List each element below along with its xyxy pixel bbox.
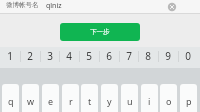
button[interactable]: e [42, 84, 59, 112]
button[interactable]: w [22, 84, 39, 112]
staticText: 1 [7, 49, 13, 63]
staticText: u [127, 95, 133, 107]
button[interactable]: 7 [119, 47, 139, 64]
button[interactable]: q [2, 84, 19, 112]
staticText: 3 [47, 49, 53, 63]
staticText: w [27, 95, 35, 107]
button[interactable]: 1 [0, 47, 20, 64]
staticText: qlniz [46, 1, 62, 11]
staticText: r [69, 95, 73, 107]
button[interactable]: 微博帐号名 [0, 0, 200, 13]
staticText: 0 [185, 49, 191, 63]
button[interactable]: u [121, 84, 138, 112]
staticText: y [107, 95, 112, 107]
button[interactable]: r [62, 84, 79, 112]
staticText: 4 [66, 49, 72, 63]
button[interactable]: p [180, 84, 197, 112]
button[interactable]: y [101, 84, 118, 112]
staticText: 6 [106, 49, 112, 63]
button[interactable]: o [160, 84, 177, 112]
button[interactable]: i [141, 84, 158, 112]
button[interactable]: 9 [158, 47, 178, 64]
button[interactable]: 3 [40, 47, 60, 64]
button[interactable]: 8 [138, 47, 158, 64]
button[interactable]: 0 [178, 47, 198, 64]
staticText: 微博帐号名 [6, 1, 39, 9]
button[interactable]: 5 [79, 47, 99, 64]
button[interactable]: 下一步 [60, 23, 140, 41]
staticText: 8 [145, 49, 151, 63]
button[interactable]: t [81, 84, 98, 112]
button[interactable]: 4 [59, 47, 79, 64]
button[interactable]: 6 [99, 47, 119, 64]
staticText: q [8, 95, 14, 107]
staticText: o [166, 95, 172, 107]
staticText: p [186, 95, 192, 107]
staticText: 9 [165, 49, 171, 63]
staticText: 5 [86, 49, 92, 63]
staticText: 下一步 [90, 28, 110, 36]
button[interactable]: 2 [20, 47, 40, 64]
staticText: e [48, 95, 54, 107]
staticText: 2 [27, 49, 33, 63]
staticText: t [88, 95, 92, 107]
staticText: 7 [126, 49, 132, 63]
staticText: i [148, 95, 151, 107]
